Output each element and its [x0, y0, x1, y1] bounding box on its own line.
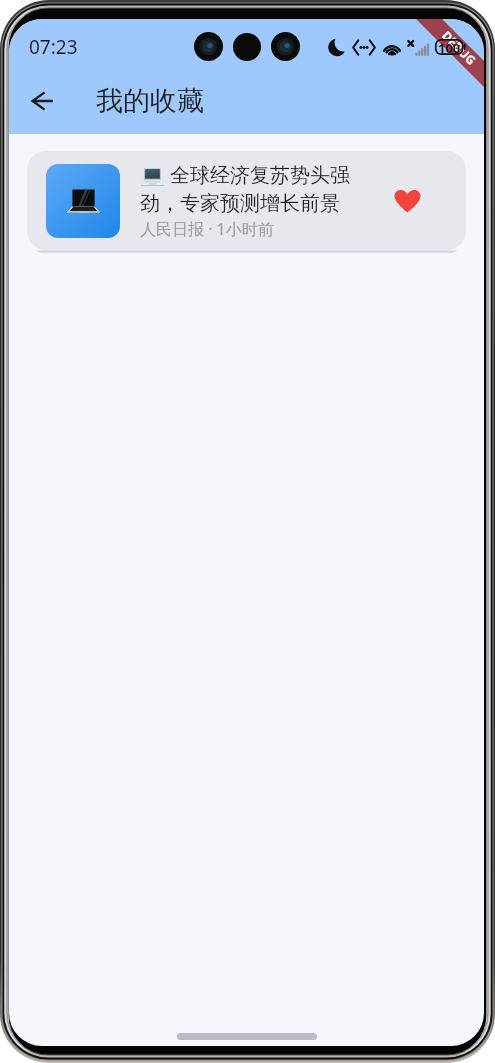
staticText: 我的收藏 [96, 84, 204, 118]
button[interactable]: 💻 全球经济复苏势头强劲，专家预测增长前景 [27, 151, 466, 250]
button[interactable]: Back [18, 77, 66, 125]
staticText: 100 [438, 39, 461, 55]
staticText: 07:23 [29, 34, 78, 60]
button[interactable]: Unfavorite [369, 178, 452, 224]
staticText: 人民日报 · 1小时前 [140, 218, 274, 240]
staticText: 💻 全球经济复苏势头强劲，专家预测增长前景 [140, 161, 369, 216]
staticText: DEBUG [439, 27, 480, 68]
